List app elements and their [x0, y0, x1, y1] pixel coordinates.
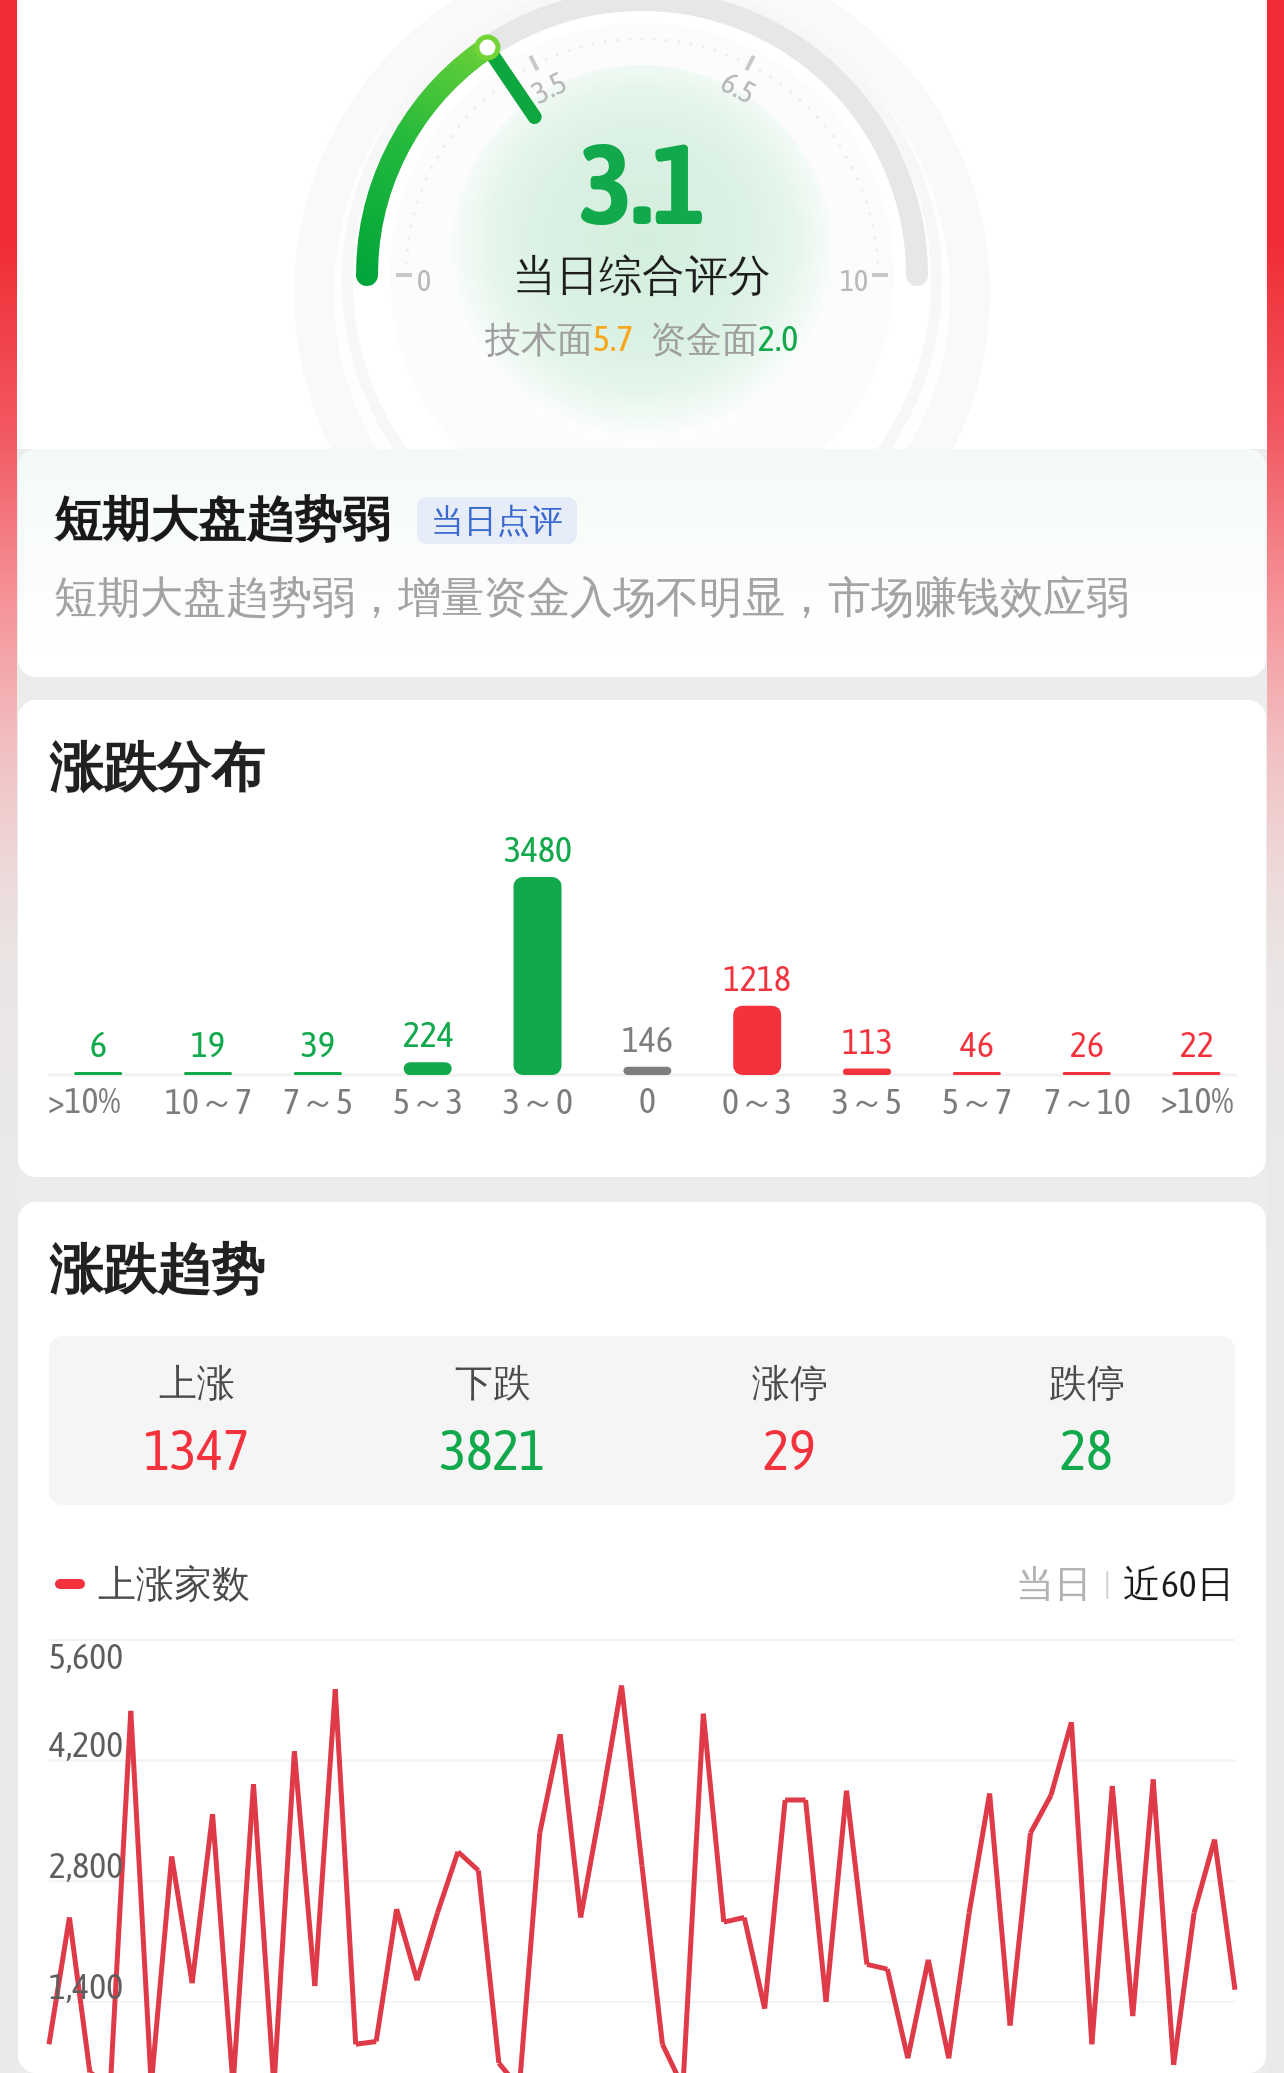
- staticText: 当日: [1016, 1560, 1092, 1608]
- staticText: 2.0: [758, 317, 799, 358]
- staticText: 短期大盘趋势弱: [54, 490, 390, 550]
- staticText: 28: [1060, 1418, 1113, 1482]
- staticText: 5.7: [593, 317, 634, 358]
- staticText: 10～7: [165, 1079, 252, 1124]
- button[interactable]: 涨跌分布: [18, 700, 1266, 1177]
- staticText: 短期大盘趋势弱，增量资金入场不明显，市场赚钱效应弱: [54, 571, 1129, 625]
- staticText: 46: [960, 1023, 994, 1064]
- staticText: 涨跌趋势: [49, 1236, 265, 1304]
- staticText: 7～5: [283, 1079, 353, 1124]
- staticText: 当日综合评分: [513, 249, 771, 303]
- staticText: 3480: [504, 828, 572, 869]
- staticText: 0: [639, 1079, 656, 1120]
- staticText: 4,200: [49, 1723, 124, 1764]
- staticText: 3～5: [832, 1079, 902, 1124]
- staticText: 1218: [723, 957, 791, 998]
- staticText: 7～10: [1044, 1079, 1131, 1124]
- staticText: |: [1092, 1567, 1123, 1601]
- staticText: 涨跌分布: [49, 734, 265, 802]
- button[interactable]: 短期大盘趋势弱: [18, 449, 1266, 677]
- button[interactable]: 当日综合评分 3.1: [0, 0, 1284, 449]
- staticText: 跌停: [1049, 1359, 1125, 1407]
- staticText: 5,600: [49, 1635, 124, 1676]
- staticText: 2,800: [49, 1844, 124, 1885]
- staticText: 6.5: [716, 64, 762, 110]
- staticText: 26: [1070, 1023, 1104, 1064]
- staticText: 5～3: [393, 1079, 463, 1124]
- staticText: 下跌: [455, 1359, 531, 1407]
- staticText: 39: [301, 1023, 335, 1064]
- staticText: 资金面: [650, 317, 758, 362]
- staticText: 3.5: [526, 64, 572, 110]
- staticText: 0～3: [722, 1079, 792, 1124]
- staticText: 29: [763, 1418, 816, 1482]
- staticText: 224: [403, 1013, 454, 1054]
- staticText: 10: [840, 263, 869, 297]
- staticText: 当日点评: [431, 500, 563, 542]
- staticText: 6: [90, 1023, 107, 1064]
- staticText: 5～7: [942, 1079, 1012, 1124]
- staticText: 技术面: [485, 317, 593, 362]
- staticText: 3821: [440, 1418, 546, 1482]
- staticText: >10%: [48, 1079, 121, 1120]
- staticText: 19: [191, 1023, 225, 1064]
- staticText: 近60日: [1123, 1560, 1235, 1608]
- staticText: 1,400: [49, 1965, 124, 2006]
- staticText: 113: [842, 1020, 893, 1061]
- staticText: >10%: [1161, 1079, 1234, 1120]
- staticText: 上涨: [159, 1359, 235, 1407]
- staticText: 3.1: [579, 118, 706, 247]
- staticText: 涨停: [752, 1359, 828, 1407]
- staticText: 22: [1180, 1023, 1214, 1064]
- staticText: 1347: [144, 1418, 250, 1482]
- staticText: 上涨家数: [98, 1560, 250, 1608]
- staticText: 146: [622, 1018, 673, 1059]
- button[interactable]: 涨跌趋势: [18, 1202, 1266, 2073]
- staticText: 0: [417, 263, 432, 297]
- staticText: 3～0: [503, 1079, 573, 1124]
- button[interactable]: 近60日: [1123, 1560, 1235, 1608]
- button[interactable]: 当日: [1016, 1560, 1092, 1608]
